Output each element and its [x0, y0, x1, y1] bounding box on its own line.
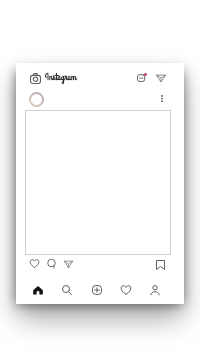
button[interactable]: Activity: [121, 285, 131, 295]
button[interactable]: Like: [30, 259, 39, 268]
button[interactable]: IGTV: [137, 73, 147, 82]
button[interactable]: Comment: [47, 259, 56, 268]
staticText: Instagram: [45, 71, 77, 84]
button[interactable]: Profile story: [29, 92, 44, 107]
button[interactable]: Save: [156, 260, 165, 270]
button[interactable]: Direct messages: [156, 74, 166, 82]
button[interactable]: Search: [62, 285, 72, 295]
button[interactable]: Instagram: [45, 71, 77, 84]
button[interactable]: Camera: [30, 73, 41, 84]
button[interactable]: Share: [64, 260, 73, 268]
button[interactable]: New post: [92, 285, 102, 295]
button[interactable]: More options: [158, 94, 166, 103]
button[interactable]: Profile: [150, 285, 160, 295]
button[interactable]: Home: [33, 285, 43, 295]
